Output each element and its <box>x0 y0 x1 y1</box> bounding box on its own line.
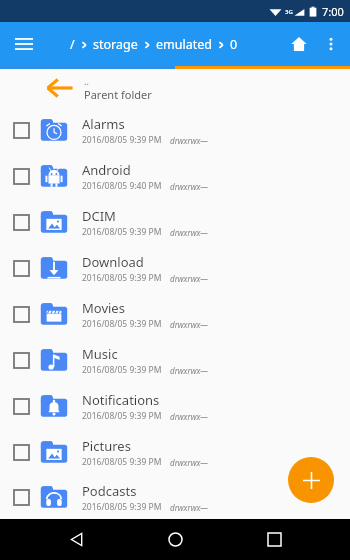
staticText: Music <box>82 345 118 363</box>
button[interactable]: Recent apps <box>252 519 296 560</box>
staticText: Android <box>82 161 131 179</box>
staticText: 0 <box>230 36 238 53</box>
button[interactable]: storage <box>91 36 140 53</box>
staticText: 7:00 <box>322 4 344 19</box>
button[interactable]: Home <box>282 27 316 61</box>
button[interactable]: Back <box>55 519 99 560</box>
staticText: 2016/08/05 9:39 PM <box>82 364 162 376</box>
button[interactable]: Select Android <box>8 163 34 189</box>
staticText: drwxrwx— <box>170 227 208 238</box>
button[interactable]: Select Movies <box>0 291 350 337</box>
button[interactable]: Select Alarms <box>8 117 34 143</box>
button[interactable]: Select DCIM <box>0 199 350 245</box>
button[interactable]: Open navigation drawer <box>8 28 40 60</box>
staticText: 2016/08/05 9:39 PM <box>82 456 162 468</box>
staticText: drwxrwx— <box>170 411 208 422</box>
button[interactable]: 0 <box>228 36 240 53</box>
staticText: 3G <box>285 8 293 16</box>
staticText: emulated <box>156 36 212 53</box>
button[interactable]: / <box>68 36 77 53</box>
button[interactable]: emulated <box>154 36 214 53</box>
staticText: Podcasts <box>82 482 137 500</box>
staticText: 2016/08/05 9:40 PM <box>82 180 162 192</box>
staticText: 2016/08/05 9:39 PM <box>82 318 162 330</box>
staticText: 2016/08/05 9:39 PM <box>82 501 162 513</box>
staticText: 2016/08/05 9:39 PM <box>82 272 162 284</box>
staticText: drwxrwx— <box>170 502 208 513</box>
button[interactable]: Add <box>288 457 334 503</box>
button[interactable]: Select Podcasts <box>0 475 350 519</box>
button[interactable]: Select Music <box>8 347 34 373</box>
staticText: storage <box>93 36 138 53</box>
staticText: Alarms <box>82 115 125 133</box>
staticText: drwxrwx— <box>170 181 208 192</box>
button[interactable]: Select Notifications <box>0 383 350 429</box>
button[interactable]: Select Alarms <box>0 107 350 153</box>
staticText: .. <box>84 75 89 87</box>
button[interactable]: Select Podcasts <box>8 484 34 510</box>
staticText: 2016/08/05 9:39 PM <box>82 410 162 422</box>
staticText: 2016/08/05 9:39 PM <box>82 134 162 146</box>
staticText: drwxrwx— <box>170 273 208 284</box>
button[interactable]: Select Pictures <box>0 429 350 475</box>
button[interactable]: .. <box>0 69 350 107</box>
button[interactable]: Select Notifications <box>8 393 34 419</box>
button[interactable]: Select Music <box>0 337 350 383</box>
staticText: Pictures <box>82 437 131 455</box>
button[interactable]: Select Android <box>0 153 350 199</box>
staticText: drwxrwx— <box>170 319 208 330</box>
button[interactable]: Select Download <box>0 245 350 291</box>
staticText: / <box>70 36 75 53</box>
button[interactable]: Home <box>153 519 197 560</box>
staticText: drwxrwx— <box>170 135 208 146</box>
button[interactable]: More options <box>316 29 346 59</box>
staticText: Parent folder <box>84 87 152 102</box>
staticText: Movies <box>82 299 125 317</box>
button[interactable]: Select Download <box>8 255 34 281</box>
staticText: 2016/08/05 9:39 PM <box>82 226 162 238</box>
staticText: drwxrwx— <box>170 457 208 468</box>
staticText: drwxrwx— <box>170 365 208 376</box>
staticText: Download <box>82 253 144 271</box>
button[interactable]: Select Pictures <box>8 439 34 465</box>
button[interactable]: Select Movies <box>8 301 34 327</box>
staticText: DCIM <box>82 207 116 225</box>
staticText: Notifications <box>82 391 160 409</box>
button[interactable]: Select DCIM <box>8 209 34 235</box>
